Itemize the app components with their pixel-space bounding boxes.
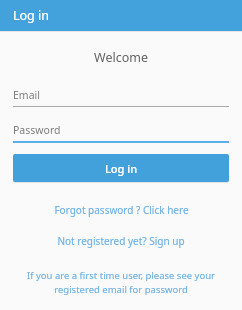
staticText: If you are a first time user, please see… (18, 269, 224, 296)
staticText: Not registered yet? Sign up (57, 234, 185, 248)
button[interactable]: Not registered yet? Sign up (0, 231, 242, 251)
button[interactable]: Forgot password ? Click here (0, 200, 242, 220)
button[interactable]: Password (13, 123, 229, 143)
staticText: Log in (13, 7, 50, 24)
staticText: Welcome (0, 49, 242, 66)
button[interactable]: Log in (13, 154, 229, 182)
button[interactable]: Email (13, 88, 229, 107)
staticText: Email (13, 88, 40, 102)
staticText: Log in (105, 161, 138, 176)
staticText: Forgot password ? Click here (54, 203, 189, 217)
staticText: Password (13, 123, 61, 137)
